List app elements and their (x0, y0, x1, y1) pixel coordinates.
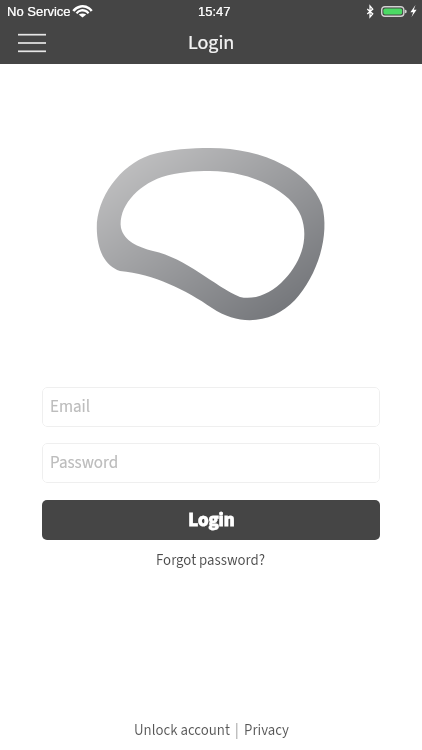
staticText: Email (50, 395, 91, 419)
staticText: Privacy (244, 720, 289, 741)
button[interactable]: Forgot password? (148, 548, 274, 573)
button[interactable]: Email (42, 387, 380, 427)
button[interactable]: Privacy (239, 716, 294, 745)
staticText: Password (50, 451, 119, 475)
button[interactable]: Login (42, 500, 380, 540)
button[interactable]: Menu (8, 22, 56, 64)
button[interactable]: Unlock account (129, 716, 235, 745)
staticText: 15:47 (198, 4, 231, 19)
staticText: | (235, 720, 239, 741)
staticText: No Service (7, 4, 71, 19)
staticText: Login (188, 29, 235, 57)
staticText: Forgot password? (156, 550, 266, 571)
button[interactable]: Password (42, 443, 380, 483)
staticText: Unlock account (134, 720, 230, 741)
staticText: Login (188, 507, 235, 534)
